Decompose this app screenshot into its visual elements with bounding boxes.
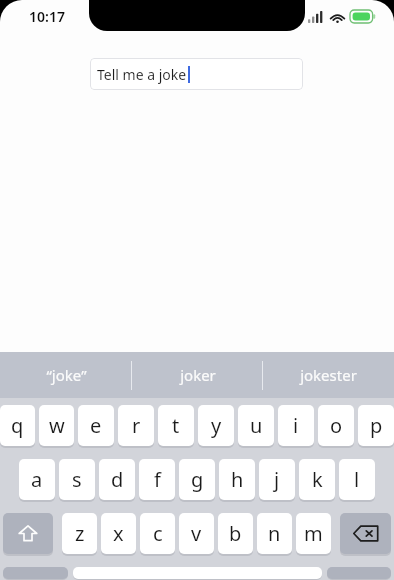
staticText: y [211,412,222,439]
button[interactable]: Delete [340,513,391,556]
staticText: q [11,412,24,439]
staticText: s [72,466,82,493]
staticText: k [312,466,323,493]
staticText: o [330,412,343,439]
button[interactable]: joker [132,352,263,398]
staticText: joker [180,365,216,385]
button[interactable]: m [296,513,331,556]
button[interactable]: c [140,513,175,556]
staticText: e [90,412,102,439]
staticText: h [231,466,244,493]
staticText: jokester [300,365,357,385]
staticText: u [250,412,263,439]
button[interactable]: k [299,459,335,502]
button[interactable]: l [339,459,375,502]
staticText: w [49,412,65,439]
button[interactable]: Shift [3,513,53,556]
button[interactable]: n [257,513,292,556]
button[interactable]: i [278,405,314,448]
button[interactable]: o [318,405,354,448]
staticText: “joke” [46,365,87,385]
button[interactable]: Tell me a joke [90,58,303,90]
staticText: x [113,520,124,547]
button[interactable]: t [158,405,194,448]
staticText: 10:17 [29,7,65,26]
staticText: c [153,520,163,547]
button[interactable]: Keyboard function [327,567,391,580]
staticText: j [274,466,280,493]
staticText: b [229,520,242,547]
button[interactable]: y [198,405,234,448]
staticText: a [31,466,43,493]
button[interactable]: h [219,459,255,502]
button[interactable]: “joke” [0,352,132,398]
button[interactable]: d [99,459,135,502]
button[interactable]: jokester [263,352,394,398]
button[interactable]: u [238,405,274,448]
staticText: l [354,466,360,493]
button[interactable]: z [62,513,97,556]
staticText: v [191,520,202,547]
staticText: f [154,466,161,493]
button[interactable]: f [139,459,175,502]
button[interactable]: r [118,405,154,448]
staticText: p [370,412,383,439]
button[interactable]: g [179,459,215,502]
staticText: r [132,412,141,439]
button[interactable]: q [0,405,35,448]
button[interactable]: e [78,405,114,448]
button[interactable]: s [59,459,95,502]
staticText: z [75,520,85,547]
staticText: d [111,466,124,493]
staticText: i [293,412,299,439]
button[interactable]: w [39,405,74,448]
staticText: m [304,520,323,547]
button[interactable]: b [218,513,253,556]
staticText: g [191,466,204,493]
button[interactable]: Space [73,567,322,580]
button[interactable]: Keyboard function [3,567,68,580]
staticText: n [268,520,281,547]
button[interactable]: v [179,513,214,556]
button[interactable]: x [101,513,136,556]
button[interactable]: j [259,459,295,502]
staticText: t [172,412,180,439]
button[interactable]: p [358,405,394,448]
staticText: Tell me a joke [97,65,187,84]
button[interactable]: a [19,459,55,502]
